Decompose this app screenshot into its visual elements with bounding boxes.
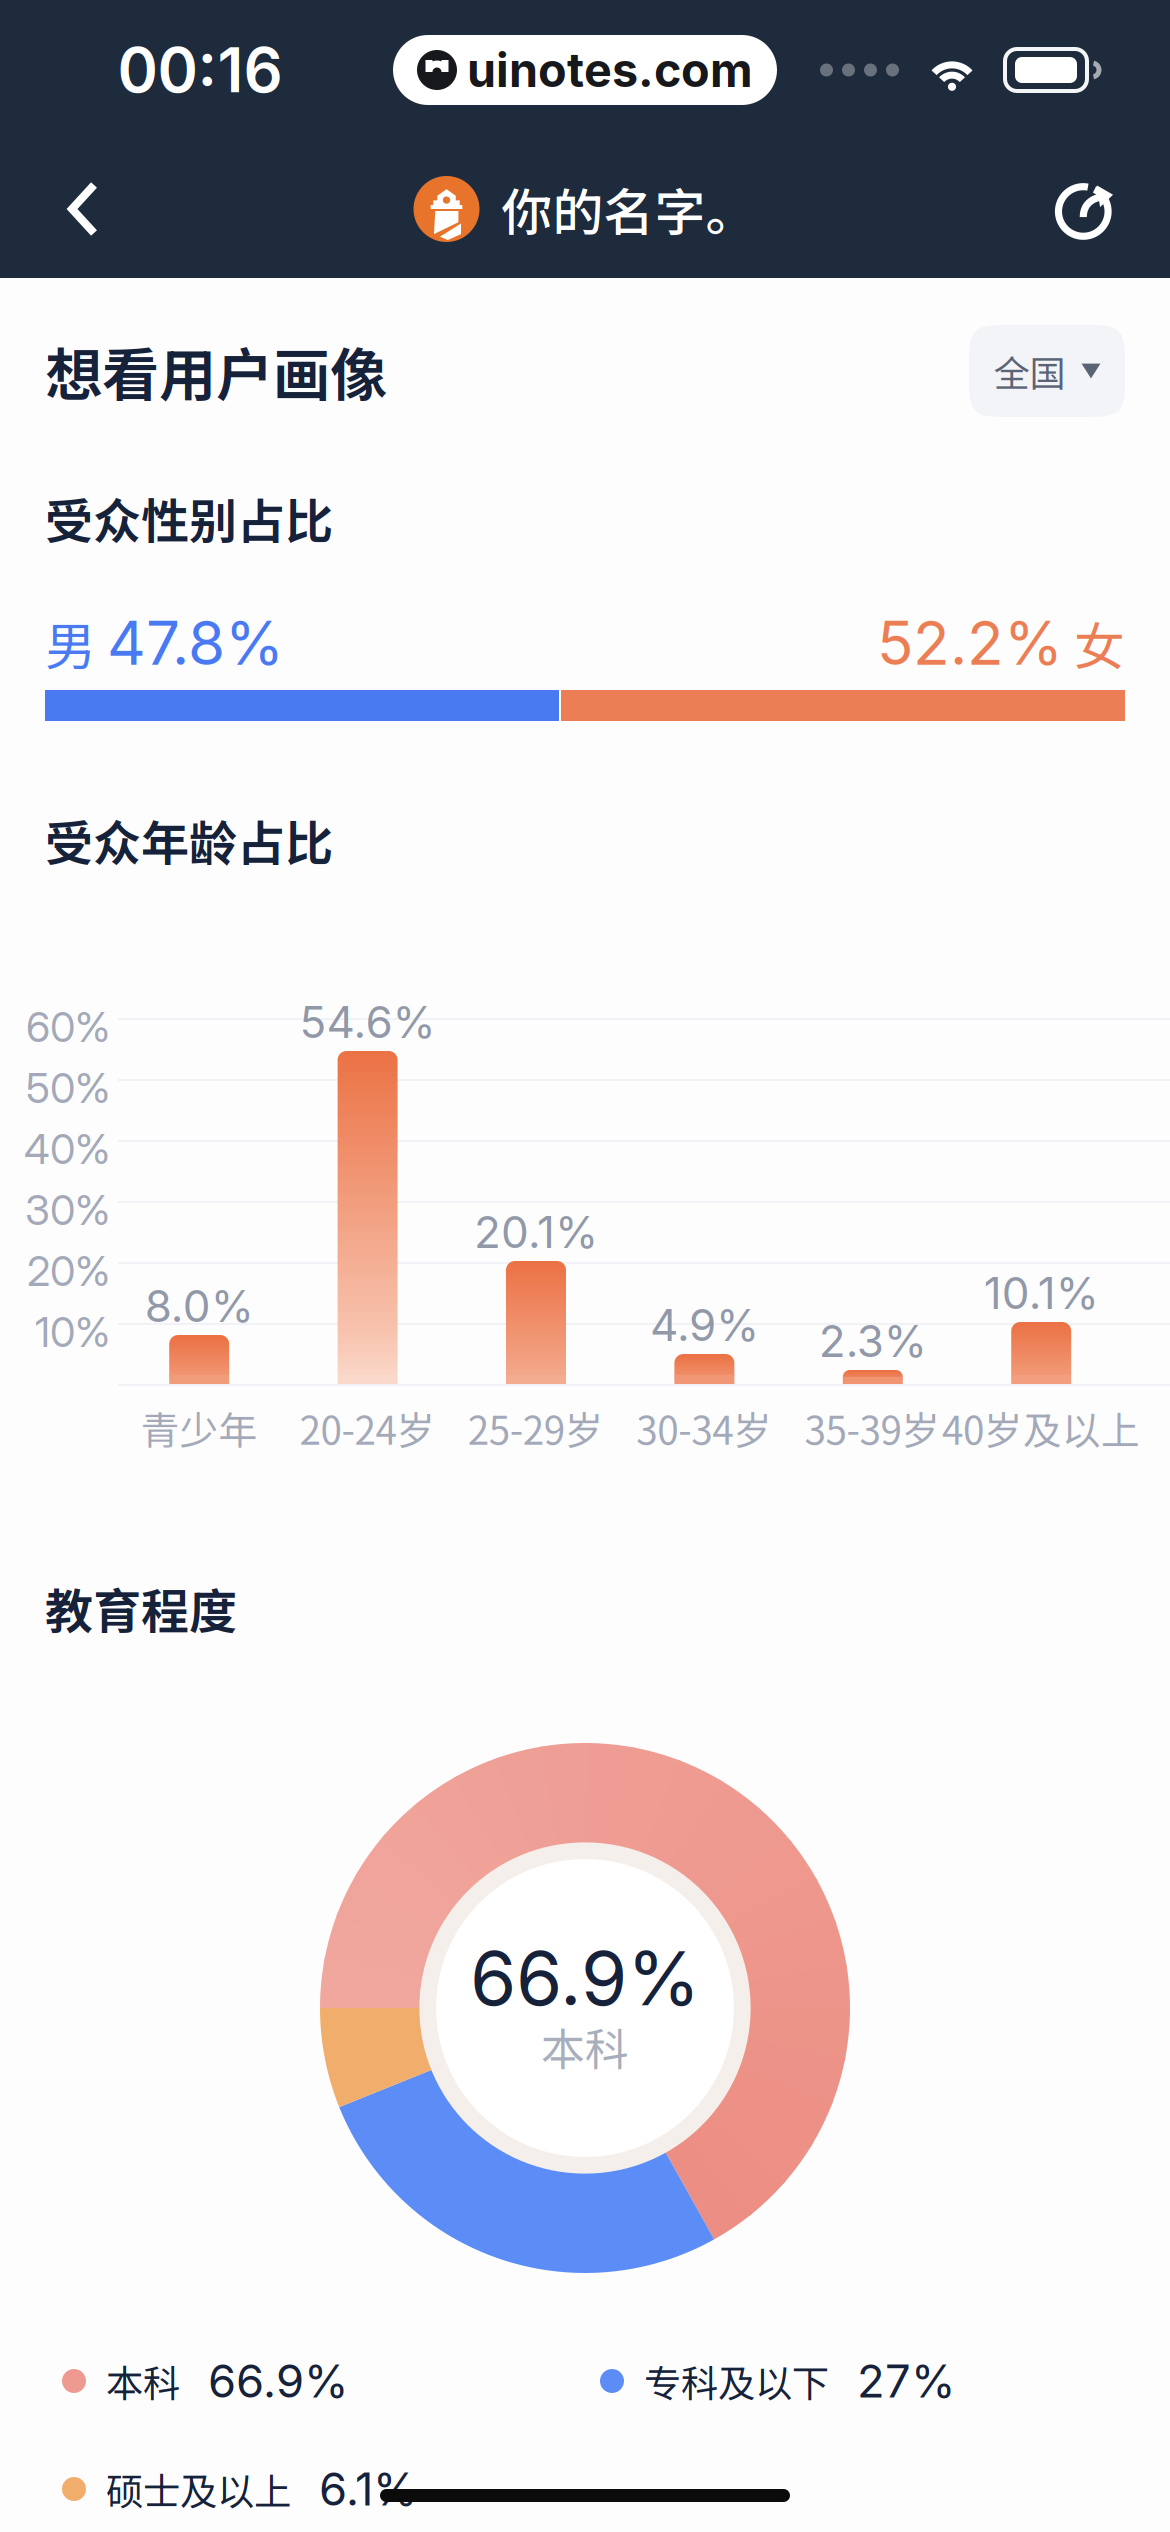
staticText: 10%	[35, 1307, 110, 1357]
staticText: 6.1%	[319, 2462, 418, 2516]
staticText: 教育程度	[45, 1573, 237, 1643]
staticText: 8.0%	[145, 1279, 254, 1333]
staticText: 本科	[106, 2354, 180, 2408]
staticText: 男	[45, 606, 107, 680]
staticText: 20%	[27, 1246, 110, 1296]
staticText: 受众年龄占比	[45, 805, 333, 875]
staticText: 想看用户画像	[45, 329, 387, 412]
staticText: uinotes.com	[467, 42, 753, 98]
staticText: 40岁及以上	[942, 1400, 1140, 1456]
staticText: 50%	[26, 1063, 110, 1113]
staticText: 10.1%	[984, 1266, 1099, 1320]
staticText: 66.9%	[470, 1933, 700, 2023]
staticText: 25-29岁	[468, 1400, 604, 1456]
staticText: 本科	[541, 2014, 629, 2078]
staticText: 66.9%	[208, 2354, 349, 2408]
button[interactable]: Back	[18, 140, 148, 278]
button[interactable]: Share	[1022, 140, 1152, 278]
staticText: 30%	[25, 1185, 110, 1235]
staticText: 硕士及以上	[106, 2462, 291, 2516]
staticText: 2.3%	[819, 1314, 927, 1368]
staticText: 40%	[24, 1124, 110, 1174]
staticText: 你的名字。	[501, 172, 756, 246]
staticText: 20.1%	[474, 1205, 598, 1259]
staticText: 专科及以下	[644, 2354, 829, 2408]
staticText: 60%	[26, 1002, 110, 1052]
staticText: 全国	[993, 345, 1065, 397]
button[interactable]: 全国	[969, 325, 1125, 417]
staticText: 女	[1063, 606, 1125, 680]
staticText: 30-34岁	[636, 1400, 772, 1456]
staticText: 4.9%	[650, 1298, 759, 1352]
staticText: 00:16	[117, 33, 282, 107]
staticText: 20-24岁	[299, 1400, 435, 1456]
staticText: 47.8%	[107, 607, 284, 679]
staticText: 54.6%	[300, 995, 436, 1049]
staticText: 35-39岁	[805, 1400, 941, 1456]
staticText: 青少年	[140, 1400, 257, 1456]
staticText: 52.2%	[877, 607, 1063, 679]
staticText: 27%	[857, 2354, 956, 2408]
staticText: 受众性别占比	[45, 483, 333, 553]
